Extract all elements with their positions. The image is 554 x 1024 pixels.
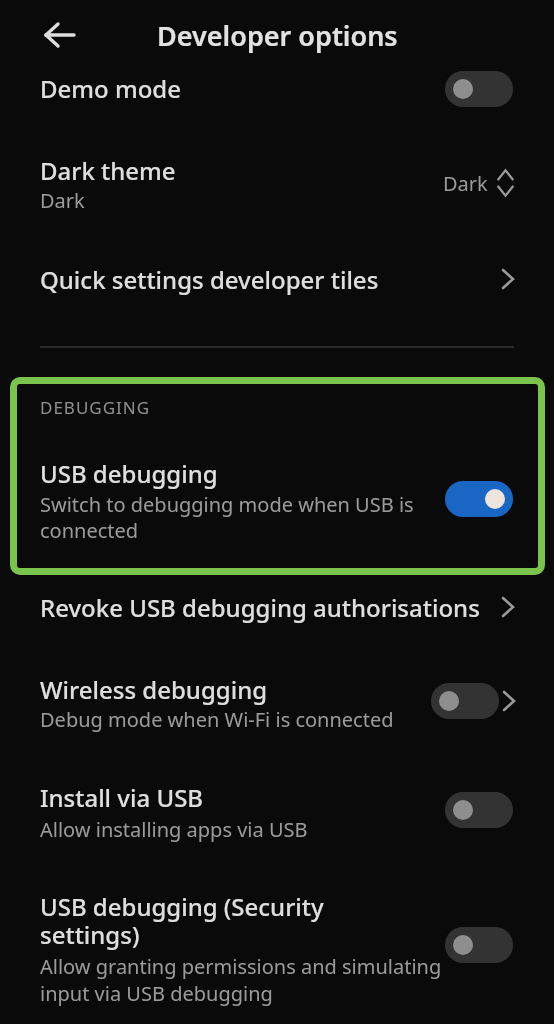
staticText: Quick settings developer tiles	[40, 263, 379, 296]
button[interactable]	[0, 250, 554, 310]
staticText: settings)	[40, 918, 140, 951]
button[interactable]: Developer options	[0, 0, 554, 70]
button[interactable]	[445, 792, 513, 828]
staticText: Debug mode when Wi-Fi is connected	[40, 706, 394, 733]
staticText: Dark theme	[40, 154, 176, 187]
staticText: Revoke USB debugging authorisations	[40, 591, 480, 624]
button[interactable]	[445, 71, 513, 107]
staticText: Dark	[40, 187, 85, 214]
staticText: USB debugging	[40, 457, 218, 490]
staticText: Install via USB	[40, 781, 204, 814]
button[interactable]	[445, 927, 513, 963]
staticText: Wireless debugging	[40, 673, 268, 706]
staticText: Switch to debugging mode when USB is	[40, 491, 414, 518]
staticText: Allow granting permissions and simulatin…	[40, 953, 442, 980]
button[interactable]	[0, 445, 554, 555]
staticText: DEBUGGING	[40, 396, 151, 419]
button[interactable]	[0, 142, 554, 220]
button[interactable]	[0, 60, 554, 118]
button[interactable]	[0, 580, 554, 636]
staticText: Demo mode	[40, 72, 181, 105]
staticText: Allow installing apps via USB	[40, 816, 308, 843]
staticText: USB debugging (Security	[40, 890, 324, 923]
staticText: Developer options	[157, 17, 398, 54]
button[interactable]	[431, 683, 499, 719]
button[interactable]	[0, 880, 554, 1015]
staticText: Dark	[443, 170, 488, 197]
button[interactable]	[0, 662, 554, 740]
button[interactable]	[0, 770, 554, 850]
staticText: connected	[40, 517, 139, 544]
staticText: input via USB debugging	[40, 980, 273, 1007]
button[interactable]	[445, 481, 513, 517]
